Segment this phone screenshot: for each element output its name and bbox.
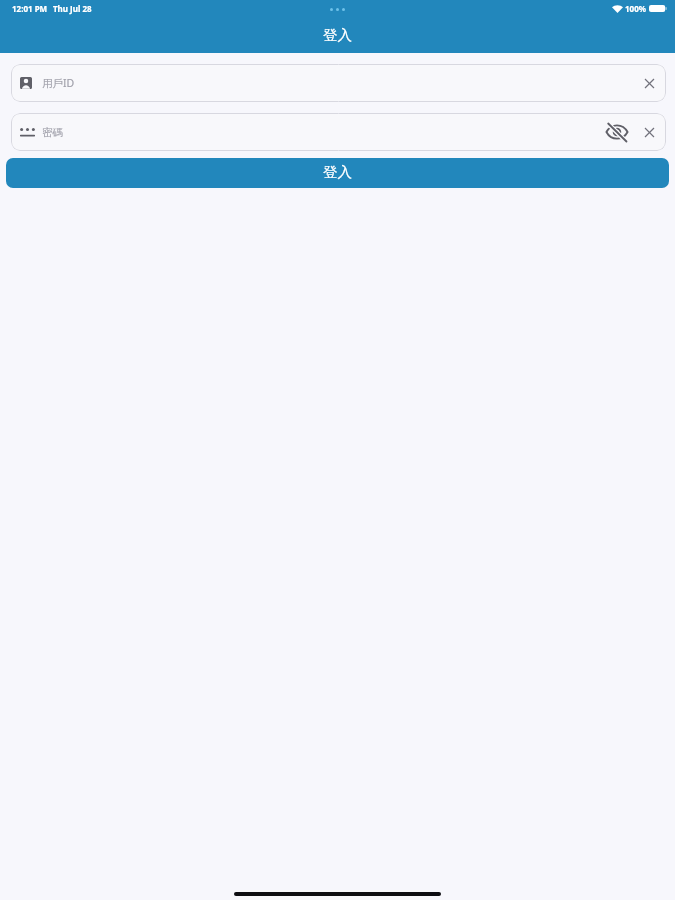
button[interactable]: 登入	[6, 158, 669, 188]
staticText: 登入	[323, 163, 352, 181]
button[interactable]: 密碼	[11, 113, 666, 151]
staticText: 密碼	[42, 126, 63, 139]
staticText: 用戶ID	[42, 76, 75, 90]
staticText: 12:01 PM	[12, 3, 48, 14]
staticText: 登入	[323, 26, 352, 44]
staticText: Thu Jul 28	[53, 3, 92, 14]
button[interactable]: Clear text	[639, 122, 659, 142]
button[interactable]: Show password	[604, 119, 630, 145]
button[interactable]: 用戶ID	[11, 64, 666, 102]
button[interactable]: Clear text	[639, 73, 659, 93]
staticText: 100%	[625, 3, 646, 14]
